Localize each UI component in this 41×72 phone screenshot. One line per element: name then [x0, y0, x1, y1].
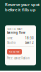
button[interactable]: Reserve [7, 49, 22, 54]
staticText: 18:30 [25, 36, 34, 40]
staticText: before it fills up [5, 7, 36, 12]
staticText: Reserve [9, 50, 20, 53]
staticText: Reserve your spot [5, 2, 40, 7]
staticText: TUE 14 MAY [7, 27, 23, 31]
staticText: Evening flow [7, 31, 25, 34]
staticText: Studio [7, 41, 16, 44]
staticText: Free cancellation [7, 56, 30, 60]
staticText: Time [7, 36, 13, 40]
staticText: Level 2 [25, 41, 34, 44]
